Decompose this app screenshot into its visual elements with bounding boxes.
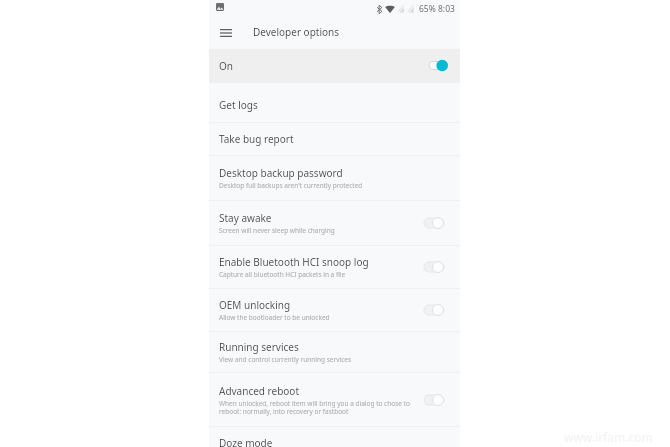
staticText: www.irfam.com: [564, 429, 653, 445]
staticText: Stay awake: [219, 211, 272, 225]
staticText: When unlocked, reboot item will bring yo…: [219, 399, 410, 408]
staticText: Desktop full backups aren't currently pr…: [219, 181, 363, 190]
staticText: 65% 8:03: [419, 3, 455, 15]
button[interactable]: Open navigation menu: [215, 22, 237, 44]
staticText: Developer options: [253, 25, 340, 39]
button[interactable]: Get logs: [209, 83, 460, 122]
staticText: Running services: [219, 340, 299, 354]
staticText: OEM unlocking: [219, 298, 291, 312]
button[interactable]: Stay awake: [209, 201, 460, 245]
staticText: Allow the bootloader to be unlocked: [219, 313, 330, 322]
staticText: Advanced reboot: [219, 384, 300, 398]
button[interactable]: Enable Bluetooth HCI snoop log: [209, 246, 460, 288]
staticText: Desktop backup password: [219, 166, 343, 180]
staticText: Screen will never sleep while charging: [219, 226, 335, 235]
button[interactable]: Doze mode: [209, 427, 460, 447]
button[interactable]: Running services: [209, 332, 460, 372]
staticText: Enable Bluetooth HCI snoop log: [219, 255, 369, 269]
staticText: Doze mode: [219, 436, 273, 447]
staticText: Get logs: [219, 98, 258, 112]
button[interactable]: On: [209, 49, 460, 82]
staticText: reboot: normally, into recovery or fastb…: [219, 407, 349, 416]
button[interactable]: Take bug report: [209, 123, 460, 155]
staticText: On: [219, 59, 233, 73]
button[interactable]: Advanced reboot: [209, 373, 460, 426]
staticText: View and control currently running servi…: [219, 355, 352, 364]
staticText: Take bug report: [219, 132, 294, 146]
button[interactable]: Desktop backup password: [209, 156, 460, 200]
button[interactable]: OEM unlocking: [209, 289, 460, 331]
staticText: Capture all bluetooth HCI packets in a f…: [219, 270, 346, 279]
